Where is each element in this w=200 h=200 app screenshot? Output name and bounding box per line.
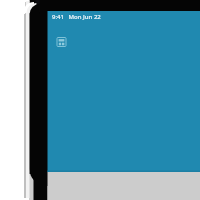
- staticText: 9:41 Mon Jun 22: [52, 13, 101, 21]
- button[interactable]: 9:41 Mon Jun 22: [52, 13, 122, 22]
- button[interactable]: Image placeholder: [56, 37, 67, 48]
